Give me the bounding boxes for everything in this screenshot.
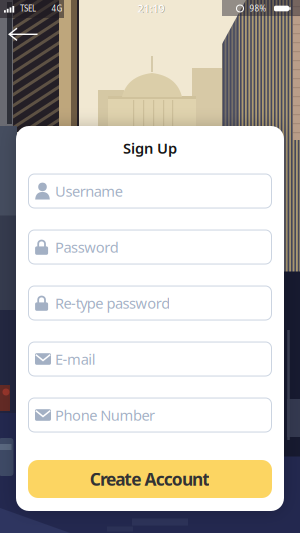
staticText: Re-type password bbox=[55, 293, 170, 313]
staticText: E-mail bbox=[55, 349, 96, 369]
button[interactable]: Username bbox=[28, 174, 271, 208]
button[interactable]: Phone Number bbox=[28, 398, 271, 432]
button[interactable] bbox=[8, 28, 37, 41]
staticText: 4G bbox=[51, 3, 62, 14]
staticText: Sign Up bbox=[123, 138, 177, 158]
staticText: Username bbox=[55, 181, 123, 201]
button[interactable]: Password bbox=[28, 230, 271, 264]
staticText: 21:19 bbox=[138, 2, 165, 16]
staticText: Phone Number bbox=[55, 405, 155, 425]
button[interactable]: Create Account bbox=[28, 460, 272, 498]
button[interactable]: E-mail bbox=[28, 342, 271, 376]
staticText: 21:19 bbox=[137, 1, 164, 16]
button[interactable]: Re-type password bbox=[28, 286, 271, 320]
staticText: 98% bbox=[249, 3, 266, 14]
staticText: Password bbox=[55, 237, 119, 257]
staticText: TSEL bbox=[20, 3, 36, 14]
staticText: Create Account bbox=[90, 467, 210, 490]
